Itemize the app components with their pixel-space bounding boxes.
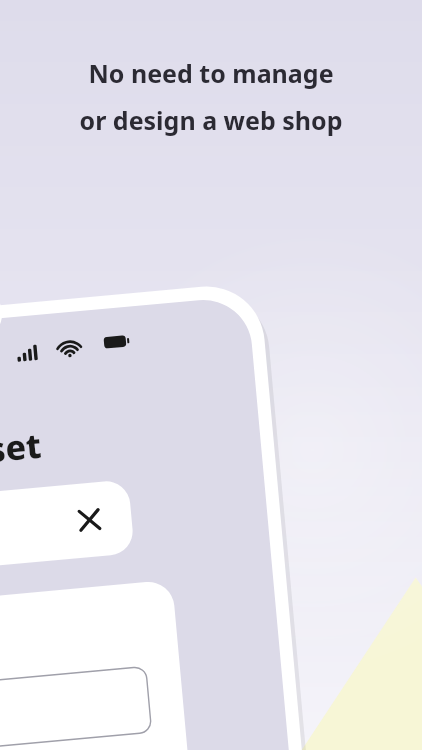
button[interactable]	[0, 492, 200, 560]
button[interactable]	[0, 585, 220, 750]
staticText: set	[0, 422, 44, 472]
staticText: No need to manage or design a web shop	[6, 56, 416, 168]
